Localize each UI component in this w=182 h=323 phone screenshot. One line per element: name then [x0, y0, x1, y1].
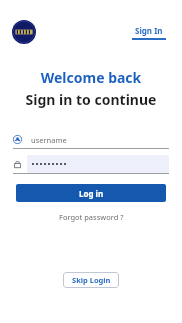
button[interactable]: Sign In	[128, 23, 170, 42]
staticText: Skip Login	[72, 275, 111, 285]
button[interactable]: username	[13, 131, 169, 149]
button[interactable]: Log in	[16, 184, 166, 202]
staticText: Sign in to continue	[0, 90, 182, 109]
staticText: Welcome back	[0, 68, 182, 87]
button[interactable]: App logo	[12, 20, 36, 44]
staticText: Log in	[79, 188, 104, 199]
staticText: username	[31, 135, 67, 145]
button[interactable]	[13, 155, 169, 174]
button[interactable]: Forgot password ?	[53, 210, 130, 224]
button[interactable]: Skip Login	[63, 272, 119, 288]
staticText: Sign In	[135, 25, 163, 36]
